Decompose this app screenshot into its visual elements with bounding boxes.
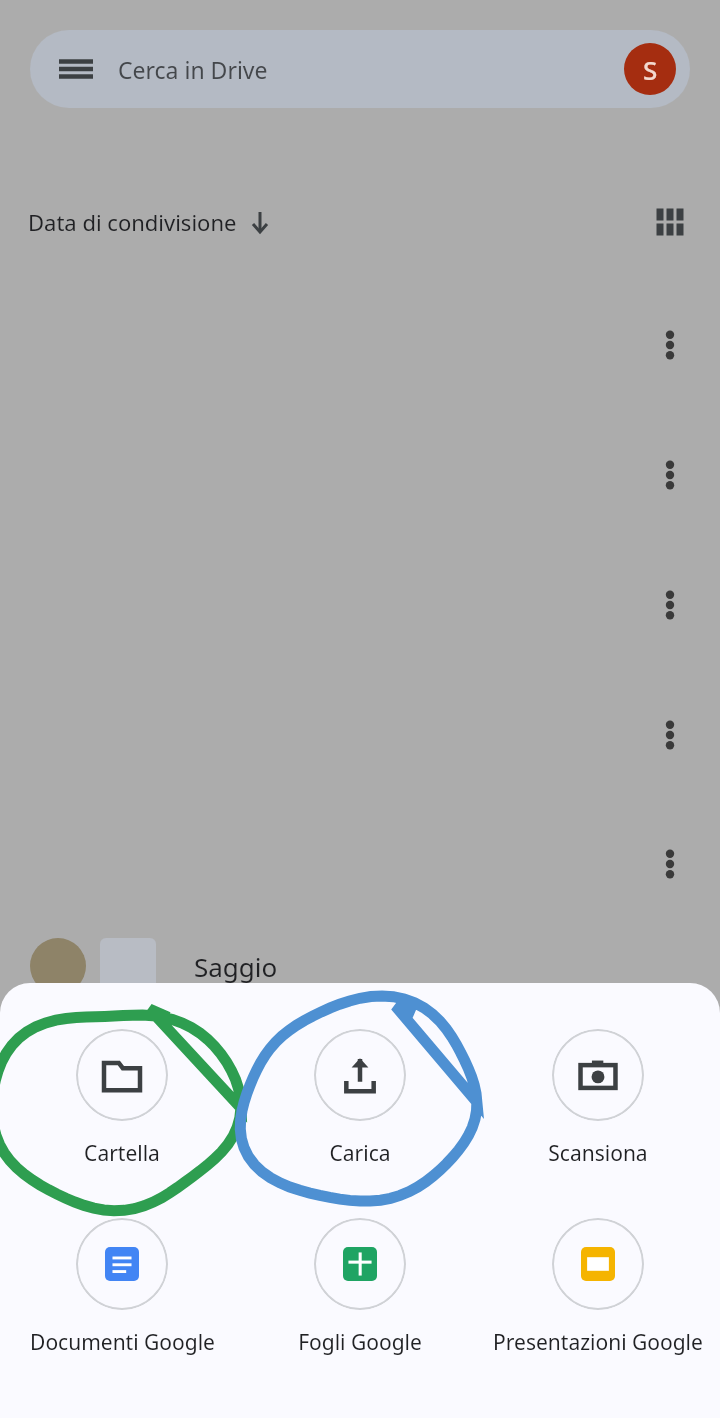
button[interactable]: Data di condivisione [28, 201, 271, 243]
button[interactable]: Presentazioni Google [482, 1214, 714, 1361]
staticText: Carica [329, 1139, 391, 1168]
staticText: Data di condivisione [28, 207, 237, 237]
staticText: Presentazioni Google [493, 1328, 703, 1357]
staticText: Documenti Google [30, 1328, 215, 1357]
button[interactable]: Fogli Google [244, 1214, 476, 1361]
button[interactable]: Altro [648, 842, 692, 886]
button[interactable]: Carica [244, 1025, 476, 1172]
staticText: S [643, 52, 658, 87]
button[interactable]: Menu [56, 49, 96, 89]
button[interactable]: Scansiona [482, 1025, 714, 1172]
button[interactable]: Altro [648, 453, 692, 497]
button[interactable]: Altro [648, 583, 692, 627]
staticText: Cerca in Drive [118, 54, 268, 85]
button[interactable]: Menu [30, 30, 690, 108]
staticText: Scansiona [548, 1139, 648, 1168]
staticText: Cartella [84, 1139, 160, 1168]
button[interactable]: Vista griglia [648, 200, 692, 244]
button[interactable]: Account [624, 43, 676, 95]
button[interactable]: Documenti Google [6, 1214, 238, 1361]
staticText: Saggio [194, 949, 278, 984]
staticText: Fogli Google [298, 1328, 422, 1357]
button[interactable]: Altro [648, 713, 692, 757]
button[interactable]: Altro [648, 323, 692, 367]
button[interactable]: Cartella [6, 1025, 238, 1172]
